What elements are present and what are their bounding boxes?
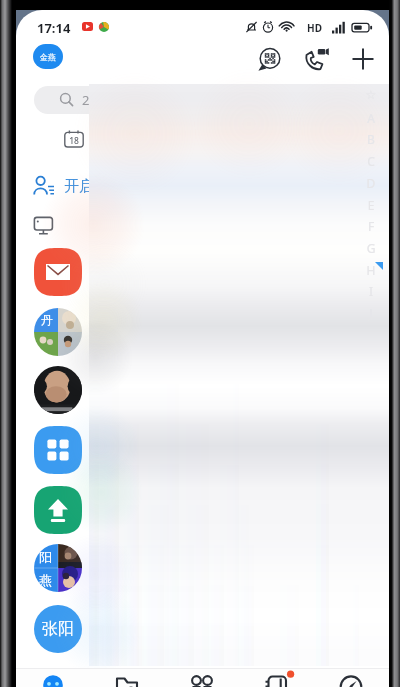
staticText: 张阳 [42, 619, 74, 639]
staticText: A [363, 110, 379, 126]
staticText: D [363, 175, 379, 191]
staticText: E [363, 197, 379, 213]
button[interactable]: Group [34, 544, 82, 592]
button[interactable]: 20 [34, 86, 284, 114]
staticText: C [363, 153, 379, 169]
staticText: 17:14 [37, 19, 71, 37]
staticText: 18 [67, 135, 81, 147]
button[interactable] [16, 208, 389, 244]
button[interactable]: Mail [34, 248, 82, 296]
staticText: 开启 [64, 177, 94, 196]
button[interactable]: Add [346, 42, 380, 76]
staticText: 丹 [41, 312, 53, 327]
staticText: HD [307, 21, 322, 35]
staticText: B [363, 131, 379, 147]
button[interactable]: Scan QR code [253, 42, 287, 76]
staticText: 20 [82, 91, 97, 109]
button[interactable]: 开启 [16, 168, 389, 206]
staticText: H [363, 262, 379, 278]
button[interactable]: 金燕 [33, 44, 63, 69]
button[interactable]: Video call [299, 42, 333, 76]
staticText: 阳 [39, 549, 52, 565]
staticText: G [363, 240, 379, 256]
button[interactable]: Files [105, 670, 149, 687]
button[interactable]: 张阳 [34, 605, 82, 653]
staticText: 金燕 [40, 52, 56, 62]
staticText: 燕 [39, 572, 52, 588]
button[interactable]: Contact [34, 366, 82, 414]
staticText: I [363, 283, 379, 299]
button[interactable]: Contacts [180, 670, 224, 687]
button[interactable]: Messages [31, 670, 75, 687]
button[interactable]: Apps [34, 426, 82, 474]
button[interactable]: Discover [329, 670, 373, 687]
button[interactable]: Upload [34, 486, 82, 534]
button[interactable]: Moments [254, 670, 298, 687]
button[interactable]: Group chat [34, 308, 82, 356]
staticText: F [363, 218, 379, 234]
